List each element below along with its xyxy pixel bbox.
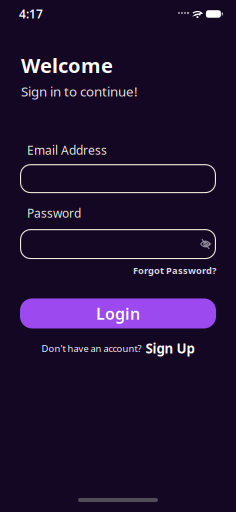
button[interactable]: Sign Up xyxy=(145,339,194,357)
staticText: Password xyxy=(27,205,81,221)
staticText: 4:17 xyxy=(19,6,43,22)
staticText: Login xyxy=(96,303,140,324)
button[interactable]: Forgot Password? xyxy=(133,264,216,276)
staticText: Sign Up xyxy=(145,339,194,357)
staticText: Don't have an account? xyxy=(41,342,141,354)
staticText: Welcome xyxy=(21,52,113,78)
staticText: Sign in to continue! xyxy=(21,82,138,100)
button[interactable]: Show password xyxy=(200,239,211,249)
button[interactable]: Login xyxy=(20,298,216,328)
staticText: Email Address xyxy=(27,142,107,158)
staticText: Forgot Password? xyxy=(133,264,216,276)
